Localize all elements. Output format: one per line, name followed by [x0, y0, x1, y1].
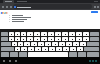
button[interactable]: Key: [55, 32, 61, 36]
button[interactable]: Key: [83, 32, 89, 36]
button[interactable]: Key: [77, 47, 83, 51]
button[interactable]: Key: [28, 47, 34, 51]
button[interactable]: Key: [42, 47, 48, 51]
button[interactable]: Key: [15, 37, 20, 41]
button[interactable]: Key: [84, 47, 99, 51]
button[interactable]: Key: [70, 47, 76, 51]
button[interactable]: Key: [24, 42, 30, 46]
button[interactable]: Key: [80, 42, 86, 46]
button[interactable]: Key: [78, 52, 86, 57]
button[interactable]: Key: [49, 47, 55, 51]
button[interactable]: Key: [15, 47, 20, 51]
button[interactable]: Key: [52, 42, 58, 46]
button[interactable]: Key: [48, 32, 54, 36]
button[interactable]: Key: [76, 32, 82, 36]
button[interactable]: [0, 20, 100, 22]
button[interactable]: Key: [41, 37, 47, 41]
button[interactable]: Key: [69, 37, 75, 41]
button[interactable]: Profile: [93, 5, 96, 8]
button[interactable]: Key: [62, 32, 68, 36]
button[interactable]: Key: [69, 32, 75, 36]
button[interactable]: Key: [12, 42, 17, 46]
button[interactable]: Key: [18, 42, 23, 46]
button[interactable]: Key: [21, 47, 27, 51]
button[interactable]: Key: [48, 37, 54, 41]
button[interactable]: Forward: [5, 5, 9, 9]
button[interactable]: Key: [76, 37, 82, 41]
button[interactable]: Key: [41, 32, 47, 36]
button[interactable]: Key: [66, 42, 72, 46]
button[interactable]: Recents: [14, 59, 18, 63]
button[interactable]: Key: [38, 42, 44, 46]
button[interactable]: [13, 4, 92, 9]
button[interactable]: Key: [90, 37, 99, 41]
button[interactable]: [3, 0, 14, 3]
button[interactable]: Home: [8, 59, 12, 63]
button[interactable]: Key: [73, 42, 79, 46]
button[interactable]: Key: [34, 37, 40, 41]
button[interactable]: Key: [15, 32, 20, 36]
button[interactable]: Key: [10, 52, 18, 57]
button[interactable]: Window controls: [93, 0, 99, 3]
button[interactable]: [0, 18, 100, 20]
button[interactable]: Back: [1, 5, 5, 9]
button[interactable]: Key: [1, 32, 8, 36]
button[interactable]: Key: [55, 37, 61, 41]
button[interactable]: Key: [34, 32, 40, 36]
button[interactable]: Key: [31, 42, 37, 46]
button[interactable]: Key: [45, 42, 51, 46]
button[interactable]: Key: [27, 32, 33, 36]
button[interactable]: Key: [69, 52, 77, 57]
button[interactable]: Key: [56, 47, 62, 51]
button[interactable]: Key: [9, 37, 14, 41]
button[interactable]: Key: [9, 32, 14, 36]
button[interactable]: [15, 0, 29, 3]
button[interactable]: Key: [87, 42, 99, 46]
button[interactable]: Key: [90, 32, 99, 36]
button[interactable]: Key: [1, 52, 9, 57]
button[interactable]: Key: [35, 47, 41, 51]
button[interactable]: Key: [1, 37, 8, 41]
button[interactable]: [91, 11, 98, 13]
button[interactable]: Key: [21, 32, 26, 36]
button[interactable]: More options: [96, 5, 99, 8]
button[interactable]: Key: [21, 37, 26, 41]
button[interactable]: Key: [59, 42, 65, 46]
button[interactable]: Key: [83, 37, 89, 41]
button[interactable]: Key: [63, 47, 69, 51]
button[interactable]: Key: [1, 42, 11, 46]
button[interactable]: [0, 14, 100, 16]
button[interactable]: Reload: [9, 5, 13, 9]
button[interactable]: Key: [1, 47, 14, 51]
button[interactable]: Key: [62, 37, 68, 41]
button[interactable]: Key: [19, 52, 27, 57]
button[interactable]: Key: [27, 37, 33, 41]
button[interactable]: Back: [2, 59, 6, 63]
button[interactable]: Key: [87, 52, 99, 57]
button[interactable]: [0, 16, 100, 18]
